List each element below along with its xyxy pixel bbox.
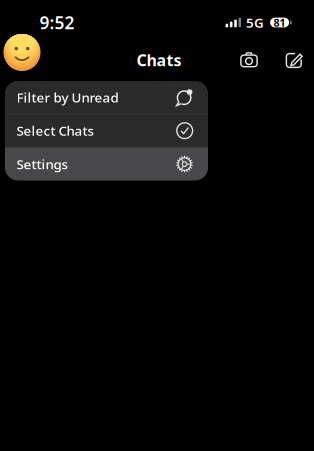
staticText: 9:52 [39,11,74,34]
button[interactable]: Camera [231,45,267,75]
staticText: Chats [136,49,181,71]
button[interactable]: Profile [0,33,44,71]
staticText: 5G [246,14,264,31]
staticText: Filter by Unread [16,88,118,106]
button[interactable]: Settings [5,148,208,180]
button[interactable]: Select Chats [5,114,208,147]
staticText: Settings [16,155,67,173]
staticText: 81 [274,15,286,30]
button[interactable]: New chat [276,45,312,75]
staticText: Select Chats [16,122,93,139]
button[interactable]: Filter by Unread [5,81,208,114]
